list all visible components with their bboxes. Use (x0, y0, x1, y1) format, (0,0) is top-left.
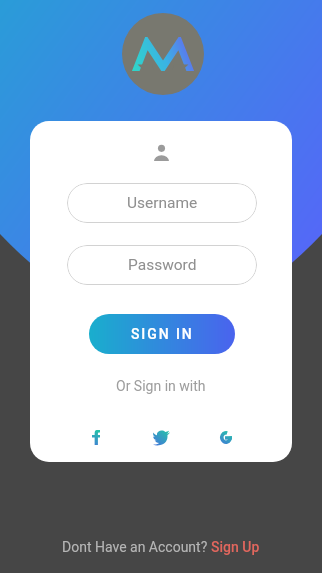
staticText: Username (127, 194, 198, 212)
button[interactable]: Username (67, 183, 257, 223)
staticText: Password (128, 256, 197, 274)
staticText: SIGN IN (131, 326, 194, 342)
button[interactable]: SIGN IN (89, 314, 235, 354)
button[interactable]: Sign in with Twitter (139, 415, 183, 459)
button[interactable]: Sign in with Google (204, 415, 248, 459)
staticText: Sign Up (211, 539, 260, 555)
button[interactable]: Password (67, 245, 257, 285)
staticText: Or Sign in with (116, 378, 206, 394)
button[interactable]: Sign in with Facebook (74, 415, 118, 459)
staticText: Dont Have an Account? (62, 539, 211, 555)
button[interactable]: Sign Up (211, 539, 260, 555)
